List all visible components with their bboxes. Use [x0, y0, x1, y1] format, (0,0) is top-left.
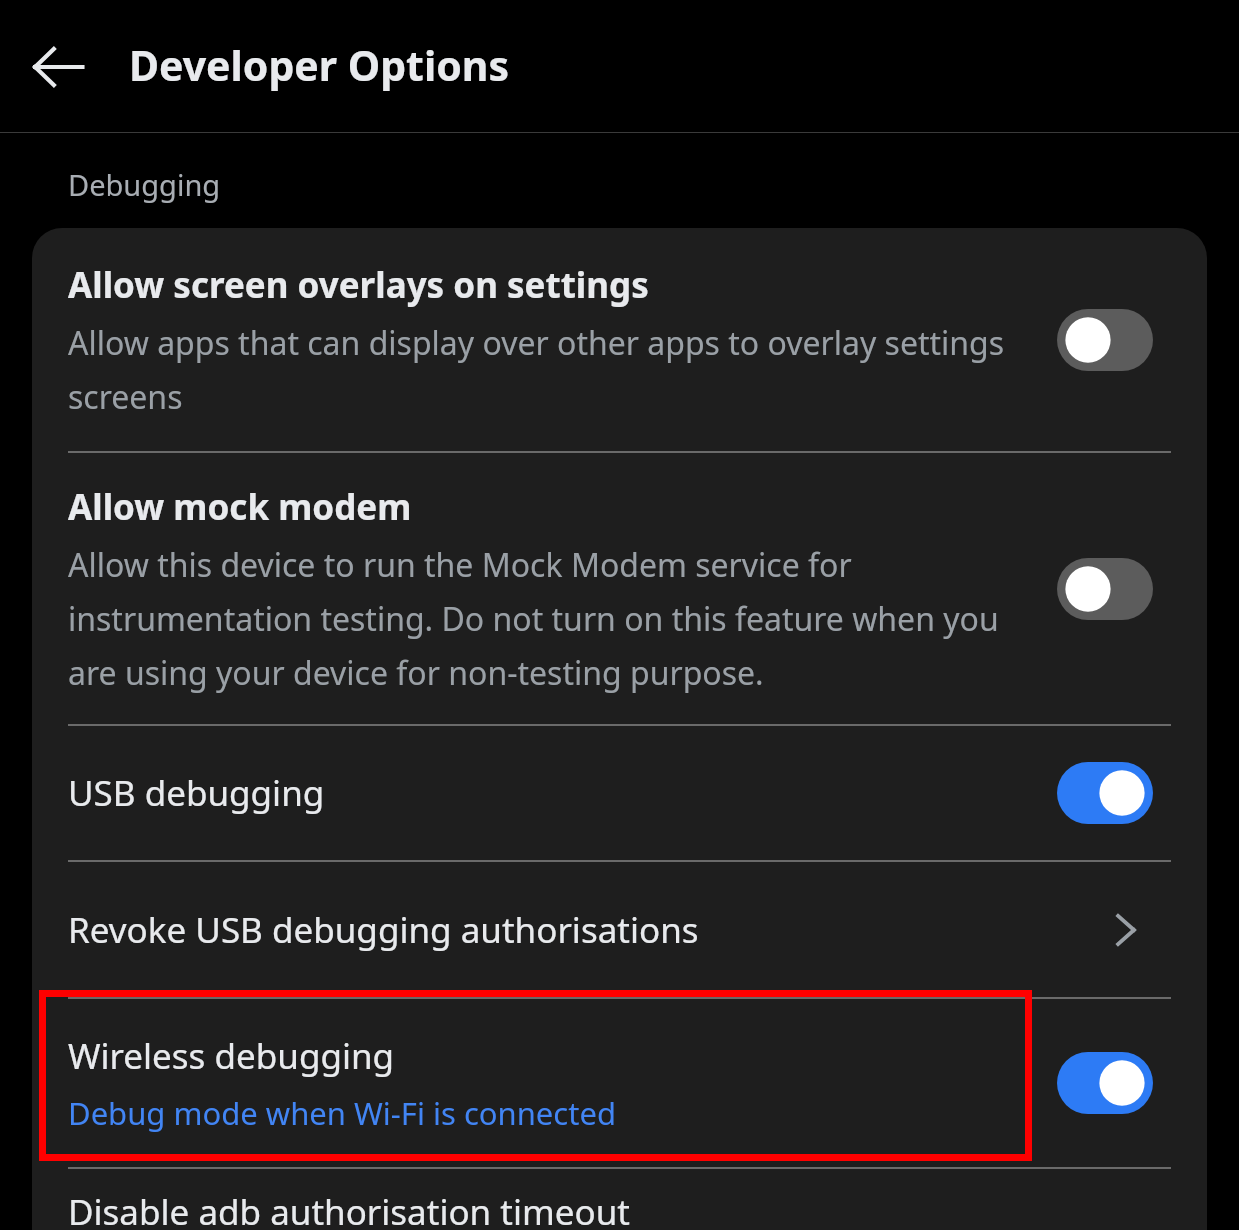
button[interactable]: Allow screen overlays on settings: [32, 228, 1207, 451]
button[interactable]: Back: [14, 23, 102, 111]
staticText: Allow this device to run the Mock Modem …: [68, 543, 1017, 695]
button[interactable]: Allow screen overlays on settings: [1039, 228, 1171, 451]
staticText: Debugging: [68, 165, 221, 204]
staticText: Allow screen overlays on settings: [68, 261, 649, 309]
button[interactable]: Disable adb authorisation timeout: [32, 1169, 1207, 1230]
button[interactable]: Allow mock modem: [32, 453, 1207, 724]
button[interactable]: USB debugging: [32, 726, 1207, 860]
button[interactable]: Wireless debugging: [32, 999, 1207, 1167]
staticText: Allow mock modem: [68, 483, 412, 531]
staticText: Debug mode when Wi-Fi is connected: [68, 1092, 616, 1134]
staticText: Wireless debugging: [68, 1032, 395, 1080]
button[interactable]: USB debugging: [1039, 726, 1171, 860]
other: Open: [1081, 885, 1171, 975]
staticText: USB debugging: [68, 769, 325, 817]
staticText: Disable adb authorisation timeout: [68, 1188, 630, 1230]
staticText: Developer Options: [129, 37, 510, 93]
staticText: Allow apps that can display over other a…: [68, 321, 1017, 419]
staticText: Revoke USB debugging authorisations: [68, 906, 1081, 954]
button[interactable]: Revoke USB debugging authorisations: [32, 862, 1207, 997]
button[interactable]: Wireless debugging: [1039, 999, 1171, 1167]
button[interactable]: Allow mock modem: [1039, 453, 1171, 724]
